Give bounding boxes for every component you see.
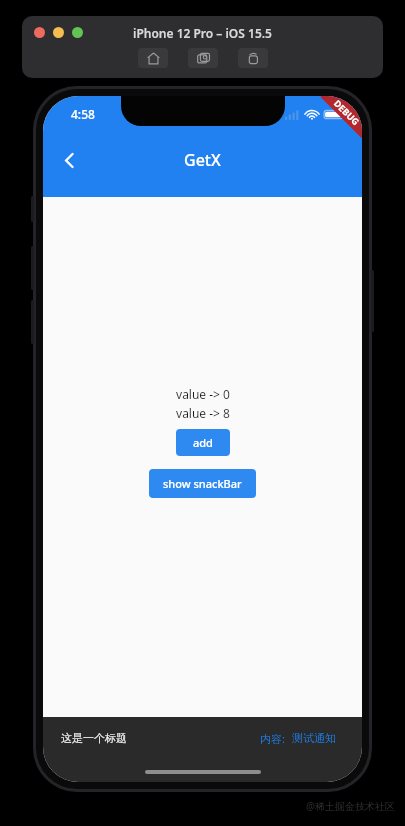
staticText: 测试通知 <box>292 731 336 745</box>
staticText: 这是一个标题 <box>61 731 127 745</box>
staticText: show snackBar <box>163 476 242 491</box>
staticText: value -> 0 <box>176 386 230 402</box>
button[interactable]: add <box>176 429 230 456</box>
button[interactable]: Simulator control <box>238 48 268 68</box>
button[interactable]: show snackBar <box>149 469 256 498</box>
button[interactable]: Simulator control <box>138 48 168 68</box>
staticText: 4:58 <box>71 106 95 122</box>
staticText: GetX <box>184 149 221 171</box>
staticText: 内容: <box>260 731 285 746</box>
button[interactable]: Simulator control <box>188 48 218 68</box>
staticText: add <box>193 435 213 450</box>
staticText: iPhone 12 Pro – iOS 15.5 <box>133 25 272 41</box>
staticText: DEBUG <box>332 97 362 127</box>
staticText: value -> 8 <box>176 405 230 421</box>
staticText: @稀土掘金技术社区 <box>306 799 395 813</box>
button[interactable]: Back <box>49 140 89 180</box>
